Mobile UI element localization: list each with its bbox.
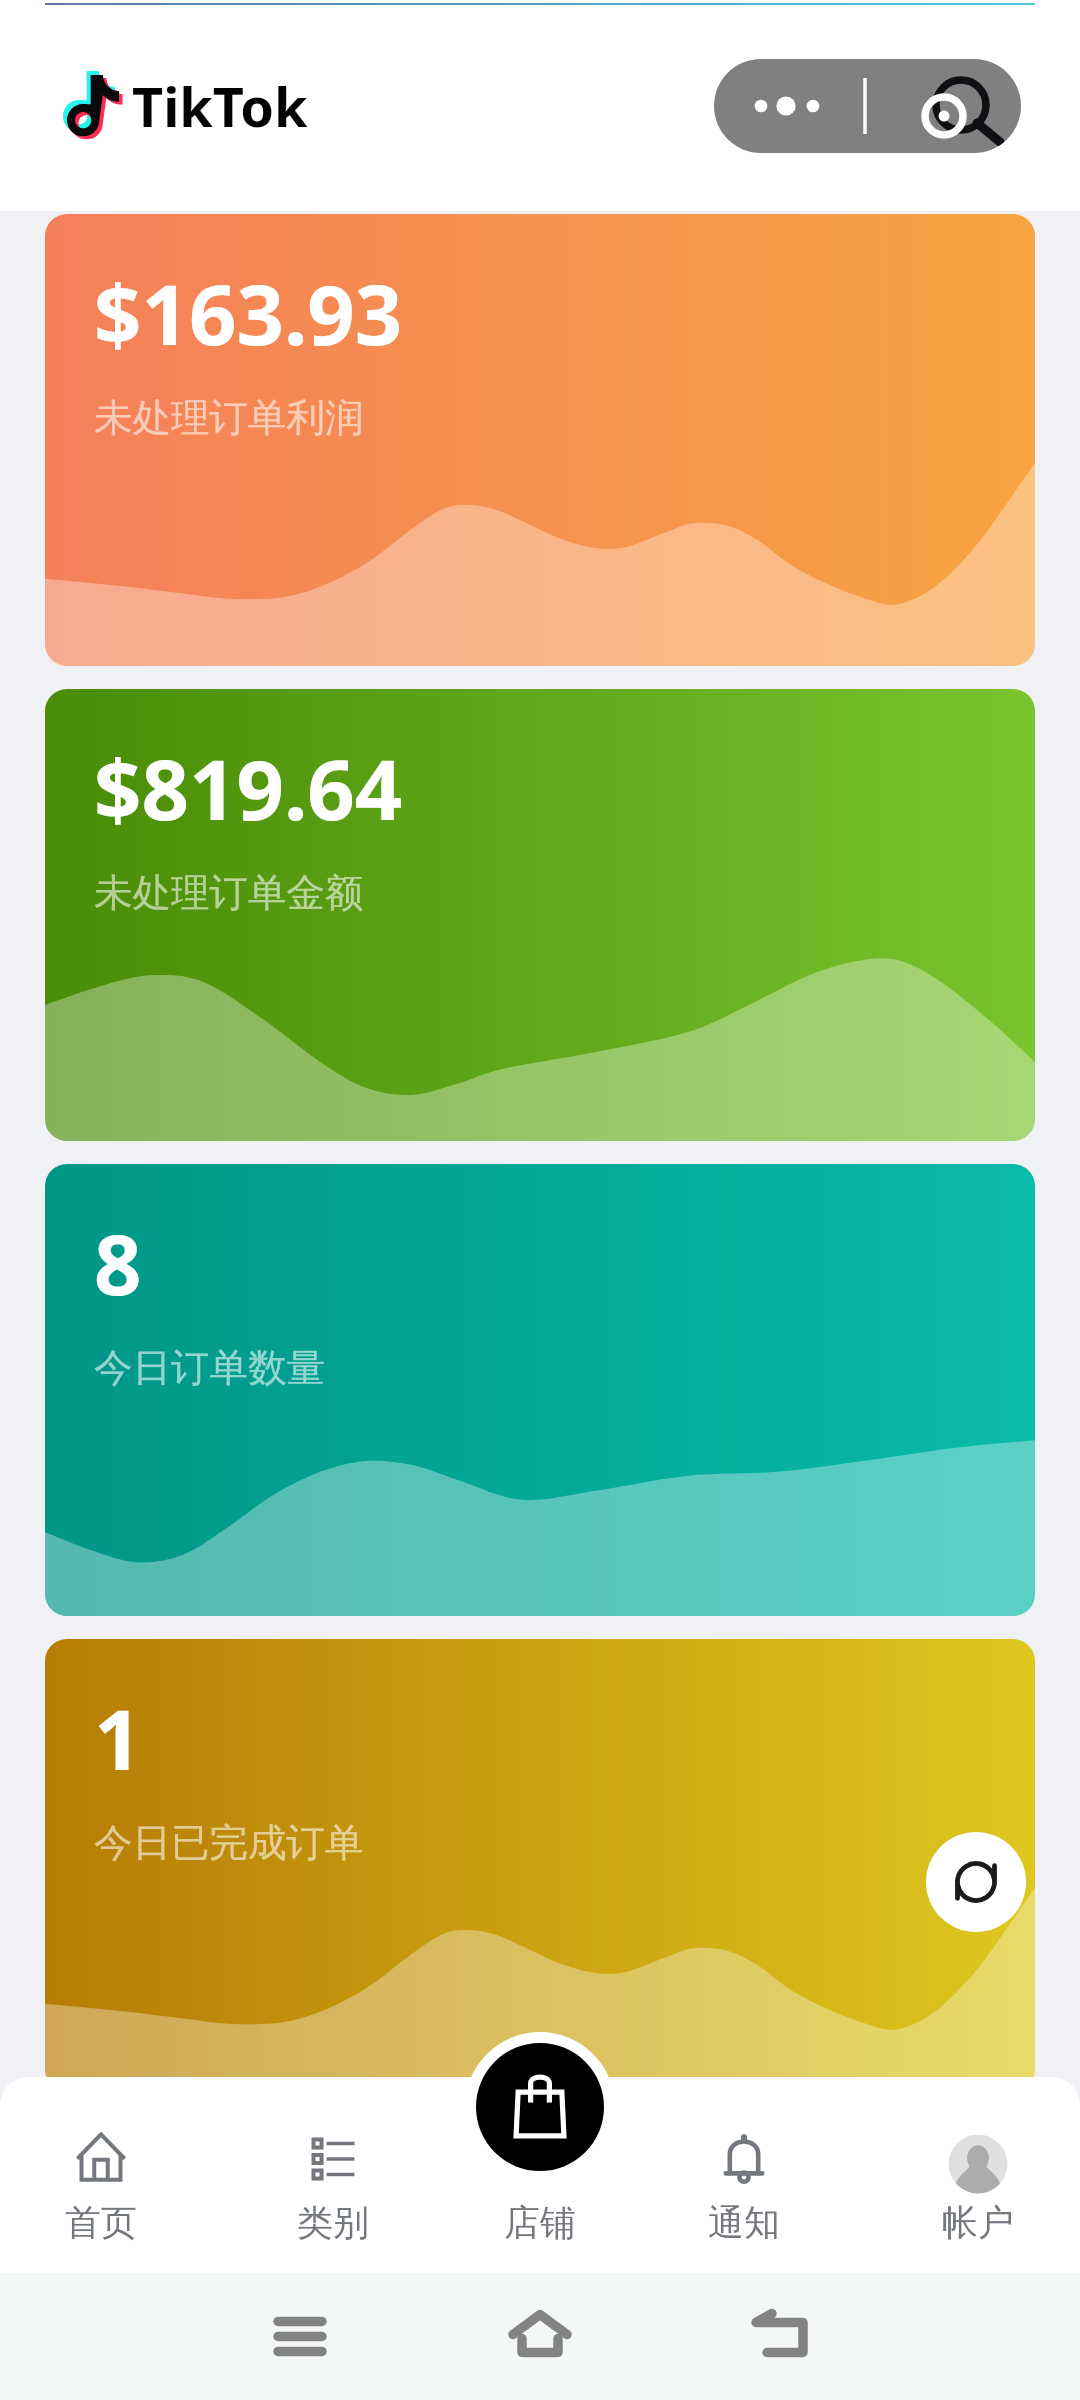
button[interactable]: Shop <box>476 2043 604 2171</box>
button[interactable]: $163.93 <box>45 214 1035 666</box>
button[interactable]: 8 <box>45 1164 1035 1616</box>
staticText: 8 <box>94 1206 142 1319</box>
button[interactable]: Refresh <box>926 1832 1026 1932</box>
staticText: TikTok <box>132 69 308 143</box>
staticText: 未处理订单金额 <box>94 869 364 918</box>
staticText: 通知 <box>708 2200 780 2245</box>
button[interactable]: More options and search <box>714 59 1021 153</box>
button[interactable]: 帐户 <box>873 2077 1080 2273</box>
staticText: 未处理订单利润 <box>94 394 364 443</box>
staticText: 今日订单数量 <box>94 1344 325 1393</box>
button[interactable]: $819.64 <box>45 689 1035 1141</box>
staticText: 店铺 <box>504 2200 576 2245</box>
button[interactable]: 类别 <box>228 2077 438 2273</box>
staticText: $819.64 <box>94 731 403 844</box>
staticText: 今日已完成订单 <box>94 1819 364 1868</box>
staticText: 帐户 <box>942 2200 1014 2245</box>
staticText: 1 <box>94 1681 142 1794</box>
button[interactable]: 店铺 <box>435 2077 645 2273</box>
staticText: $163.93 <box>94 256 403 369</box>
button[interactable]: TikTok <box>61 65 308 147</box>
staticText: 类别 <box>297 2200 369 2245</box>
button[interactable]: 1 <box>45 1639 1035 2091</box>
button[interactable]: 通知 <box>639 2077 849 2273</box>
button[interactable]: 首页 <box>0 2077 206 2273</box>
staticText: 首页 <box>65 2200 137 2245</box>
